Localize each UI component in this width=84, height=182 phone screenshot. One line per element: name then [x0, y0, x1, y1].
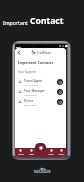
- staticText: Contact: [30, 15, 64, 27]
- button[interactable]: Back: [15, 49, 22, 56]
- button[interactable]: SOS: [35, 143, 46, 152]
- staticText: Ana Morales: [24, 83, 38, 86]
- staticText: Your Support: [18, 70, 36, 74]
- staticText: Driver: [24, 99, 34, 103]
- button[interactable]: Call Travel Agent: [57, 79, 63, 85]
- staticText: Travel Agent: [24, 79, 43, 83]
- staticText: Alerts: [48, 153, 54, 156]
- staticText: Important Contacts: [18, 60, 54, 65]
- staticText: Important: [3, 19, 28, 26]
- button[interactable]: Driver: [18, 97, 63, 107]
- button[interactable]: Call Driver: [57, 99, 63, 105]
- button[interactable]: Travel Agent: [18, 77, 63, 87]
- button[interactable]: Tour Manager: [18, 87, 63, 97]
- button[interactable]: Alerts: [46, 148, 56, 157]
- staticText: Luis Peralta: [24, 93, 38, 96]
- staticText: TrailBlazer: [37, 51, 52, 55]
- button[interactable]: Trips: [26, 148, 36, 157]
- button[interactable]: More: [56, 148, 66, 157]
- staticText: More: [58, 153, 64, 156]
- staticText: Trips: [29, 153, 34, 156]
- staticText: Tour Manager: [24, 89, 45, 93]
- staticText: TRAILBLAZER: [33, 170, 51, 174]
- button[interactable]: Home: [15, 148, 26, 157]
- button[interactable]: Call Tour Manager: [57, 89, 63, 95]
- staticText: Marco Diaz: [24, 103, 37, 106]
- staticText: 9:41: [16, 45, 21, 48]
- staticText: Home: [18, 153, 24, 156]
